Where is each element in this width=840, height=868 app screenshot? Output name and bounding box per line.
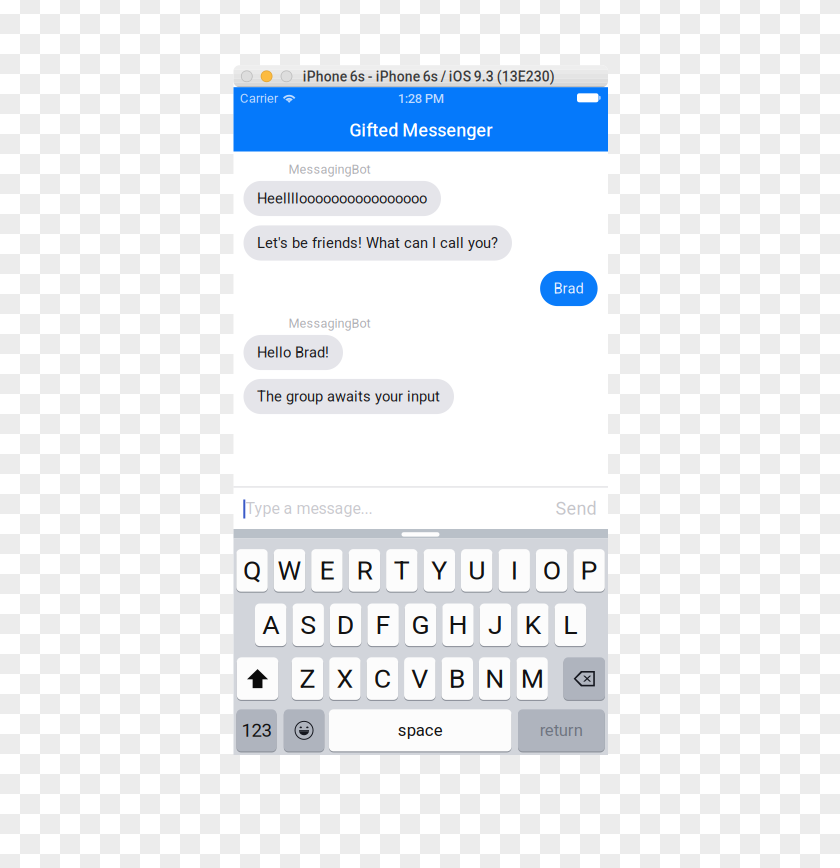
staticText: Let's be friends! What can I call you? — [257, 234, 498, 252]
staticText: G — [412, 609, 430, 640]
staticText: Carrier — [240, 91, 278, 106]
staticText: E — [319, 555, 334, 586]
button[interactable]: space — [329, 709, 511, 752]
button[interactable]: U — [461, 549, 492, 592]
staticText: T — [394, 555, 410, 586]
button[interactable]: Emoji keyboard — [284, 709, 324, 752]
staticText: X — [336, 663, 353, 694]
button[interactable]: P — [573, 549, 605, 592]
staticText: U — [468, 555, 485, 586]
button[interactable]: G — [405, 603, 436, 647]
staticText: MessagingBot — [288, 162, 370, 177]
button[interactable]: The group awaits your input — [243, 379, 454, 414]
button[interactable]: Shift — [237, 657, 278, 700]
staticText: S — [300, 609, 316, 640]
button[interactable]: X — [329, 657, 361, 700]
button[interactable]: Send — [555, 498, 596, 519]
staticText: Y — [431, 555, 447, 586]
button[interactable]: I — [498, 549, 530, 592]
staticText: Brad — [554, 280, 584, 297]
staticText: iPhone 6s - iPhone 6s / iOS 9.3 (13E230) — [303, 69, 555, 85]
staticText: J — [488, 609, 503, 640]
staticText: C — [374, 663, 391, 694]
button[interactable]: S — [292, 603, 324, 647]
staticText: O — [543, 555, 561, 586]
staticText: 123 — [241, 719, 271, 741]
staticText: MessagingBot — [288, 316, 370, 331]
button[interactable]: K — [517, 603, 549, 647]
button[interactable]: E — [311, 549, 343, 592]
staticText: Type a message... — [245, 499, 372, 518]
button[interactable]: V — [404, 657, 436, 700]
button[interactable]: Heelllloooooooooooooooo — [243, 181, 441, 216]
button[interactable]: R — [349, 549, 380, 592]
button[interactable]: B — [441, 657, 473, 700]
button[interactable]: Hello Brad! — [243, 335, 343, 370]
staticText: Gifted Messenger — [349, 120, 492, 141]
staticText: A — [262, 609, 279, 640]
staticText: The group awaits your input — [257, 388, 440, 405]
staticText: I — [511, 555, 518, 586]
staticText: F — [376, 609, 391, 640]
staticText: H — [448, 609, 467, 640]
button[interactable]: H — [442, 603, 474, 647]
button[interactable]: Let's be friends! What can I call you? — [243, 225, 512, 261]
staticText: Heelllloooooooooooooooo — [257, 190, 427, 207]
staticText: Z — [299, 663, 315, 694]
staticText: space — [398, 721, 443, 740]
staticText: L — [563, 609, 577, 640]
staticText: V — [411, 663, 428, 694]
staticText: N — [485, 663, 504, 694]
staticText: P — [581, 555, 598, 586]
button[interactable]: Z — [292, 657, 323, 700]
button[interactable]: Q — [236, 549, 268, 592]
button[interactable]: A — [255, 603, 286, 647]
button[interactable]: L — [555, 603, 586, 647]
staticText: 1:28 PM — [398, 91, 444, 106]
button[interactable]: D — [330, 603, 361, 647]
button[interactable]: M — [516, 657, 548, 700]
button[interactable]: Zoom window — [280, 70, 292, 82]
staticText: D — [337, 609, 355, 640]
staticText: Hello Brad! — [257, 344, 329, 361]
button[interactable]: O — [536, 549, 567, 592]
button[interactable]: T — [386, 549, 418, 592]
button[interactable]: Y — [424, 549, 455, 592]
staticText: return — [540, 721, 583, 740]
staticText: B — [449, 663, 466, 694]
button[interactable]: N — [479, 657, 510, 700]
button[interactable]: C — [367, 657, 398, 700]
button[interactable]: Minimize window — [261, 70, 273, 82]
button[interactable]: 123 — [236, 709, 276, 752]
staticText: R — [356, 555, 372, 586]
button[interactable]: F — [367, 603, 399, 647]
button[interactable]: Delete — [563, 657, 605, 700]
staticText: K — [524, 609, 541, 640]
button[interactable]: Close window — [241, 70, 253, 82]
staticText: Send — [555, 498, 596, 519]
staticText: Q — [243, 555, 261, 586]
button[interactable]: Brad — [540, 271, 598, 306]
button[interactable]: J — [480, 603, 511, 647]
button[interactable]: W — [274, 549, 305, 592]
staticText: M — [521, 663, 544, 694]
button[interactable]: return — [518, 709, 605, 752]
staticText: W — [277, 555, 301, 586]
